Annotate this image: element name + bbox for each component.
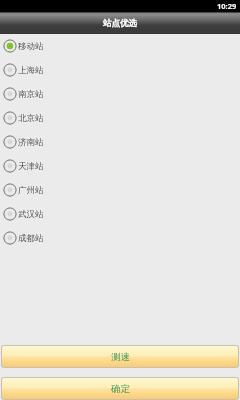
button[interactable]: 测速 — [2, 346, 238, 367]
button[interactable]: 移动站 — [0, 34, 240, 58]
staticText: 济南站 — [18, 137, 44, 148]
button[interactable]: 武汉站 — [0, 202, 240, 226]
staticText: 确定 — [111, 383, 130, 395]
staticText: 10:29 — [217, 1, 237, 11]
staticText: 成都站 — [18, 233, 44, 244]
button[interactable]: 上海站 — [0, 58, 240, 82]
staticText: 天津站 — [18, 161, 44, 172]
button[interactable]: 广州站 — [0, 178, 240, 202]
staticText: 武汉站 — [18, 209, 44, 220]
staticText: 测速 — [111, 351, 130, 363]
button[interactable]: 济南站 — [0, 130, 240, 154]
staticText: 上海站 — [18, 65, 44, 76]
staticText: 移动站 — [18, 41, 44, 52]
staticText: 南京站 — [18, 89, 44, 100]
button[interactable]: 天津站 — [0, 154, 240, 178]
button[interactable]: 北京站 — [0, 106, 240, 130]
button[interactable]: 成都站 — [0, 226, 240, 250]
button[interactable]: 南京站 — [0, 82, 240, 106]
button[interactable]: 确定 — [2, 378, 238, 399]
staticText: 广州站 — [18, 185, 44, 196]
staticText: 站点优选 — [103, 18, 137, 29]
staticText: 北京站 — [18, 113, 44, 124]
